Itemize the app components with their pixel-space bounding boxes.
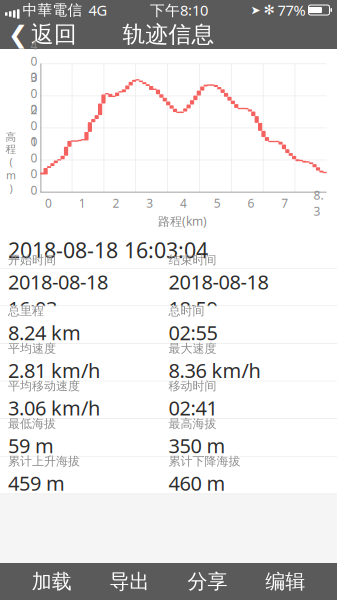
staticText: 100 (30, 134, 37, 182)
staticText: 累计上升海拔 (8, 454, 80, 469)
staticText: 最低海拔 (8, 416, 56, 431)
staticText: 5 (214, 195, 221, 211)
staticText: 02:41 (168, 394, 217, 421)
staticText: 2018-08-18 16:03 (8, 268, 108, 321)
staticText: 2018-08-18 16:03:04 (8, 236, 208, 264)
staticText: 459 m (8, 470, 65, 496)
staticText: 300 (30, 69, 37, 117)
staticText: 2018-08-18 18:59 (168, 268, 268, 321)
staticText: 6 (247, 195, 254, 211)
staticText: 移动时间 (168, 379, 216, 393)
staticText: 中華電信 (22, 1, 82, 19)
staticText: 平均速度 (8, 341, 56, 356)
staticText: ❮ (8, 21, 28, 48)
staticText: 高 (5, 131, 16, 144)
staticText: 2.81 km/h (8, 357, 100, 383)
staticText: 结束时间 (168, 253, 216, 267)
staticText: 编辑 (265, 569, 305, 594)
staticText: 350 m (168, 432, 225, 459)
staticText: 8.3 (313, 187, 323, 219)
staticText: 返回 (31, 21, 77, 48)
staticText: 下午8:10 (150, 0, 208, 20)
staticText: 平均移动速度 (8, 379, 80, 393)
staticText: 77% (277, 0, 305, 20)
staticText: 2 (112, 195, 119, 211)
staticText: 最高海拔 (168, 416, 216, 431)
staticText: 路程(km) (158, 213, 207, 229)
button[interactable]: 导出 (104, 563, 156, 600)
staticText: 轨迹信息 (122, 21, 214, 48)
button[interactable]: ❮ (0, 20, 85, 49)
staticText: 开始时间 (8, 253, 56, 267)
staticText: 8.24 km (8, 319, 81, 346)
staticText: 7 (281, 195, 288, 211)
staticText: 4G (88, 0, 107, 20)
staticText: 8.36 km/h (168, 357, 260, 383)
staticText: 加载 (32, 569, 72, 594)
staticText: ( (9, 155, 12, 169)
staticText: 460 m (168, 470, 225, 496)
staticText: m (6, 168, 16, 182)
staticText: 程 (5, 143, 16, 156)
staticText: 400 (30, 37, 37, 85)
staticText: 200 (30, 102, 37, 149)
staticText: 导出 (110, 569, 150, 594)
staticText: 累计下降海拔 (168, 454, 240, 469)
staticText: ) (9, 181, 12, 195)
staticText: 3.06 km/h (8, 394, 100, 421)
staticText: 分享 (187, 569, 227, 594)
button[interactable]: 加载 (26, 563, 78, 600)
button[interactable]: 分享 (181, 563, 233, 600)
staticText: 0 (30, 182, 37, 198)
staticText: 1 (79, 195, 86, 211)
staticText: 0 (45, 195, 52, 211)
staticText: 总里程 (8, 304, 44, 318)
staticText: ➤ (250, 3, 260, 17)
staticText: 02:55 (168, 319, 217, 346)
staticText: 59 m (8, 432, 54, 459)
staticText: ✻ (263, 2, 274, 17)
button[interactable]: 编辑 (259, 563, 311, 600)
staticText: 4 (180, 195, 187, 211)
staticText: 最大速度 (168, 341, 216, 356)
staticText: 总时间 (168, 304, 204, 318)
staticText: 3 (146, 195, 153, 211)
